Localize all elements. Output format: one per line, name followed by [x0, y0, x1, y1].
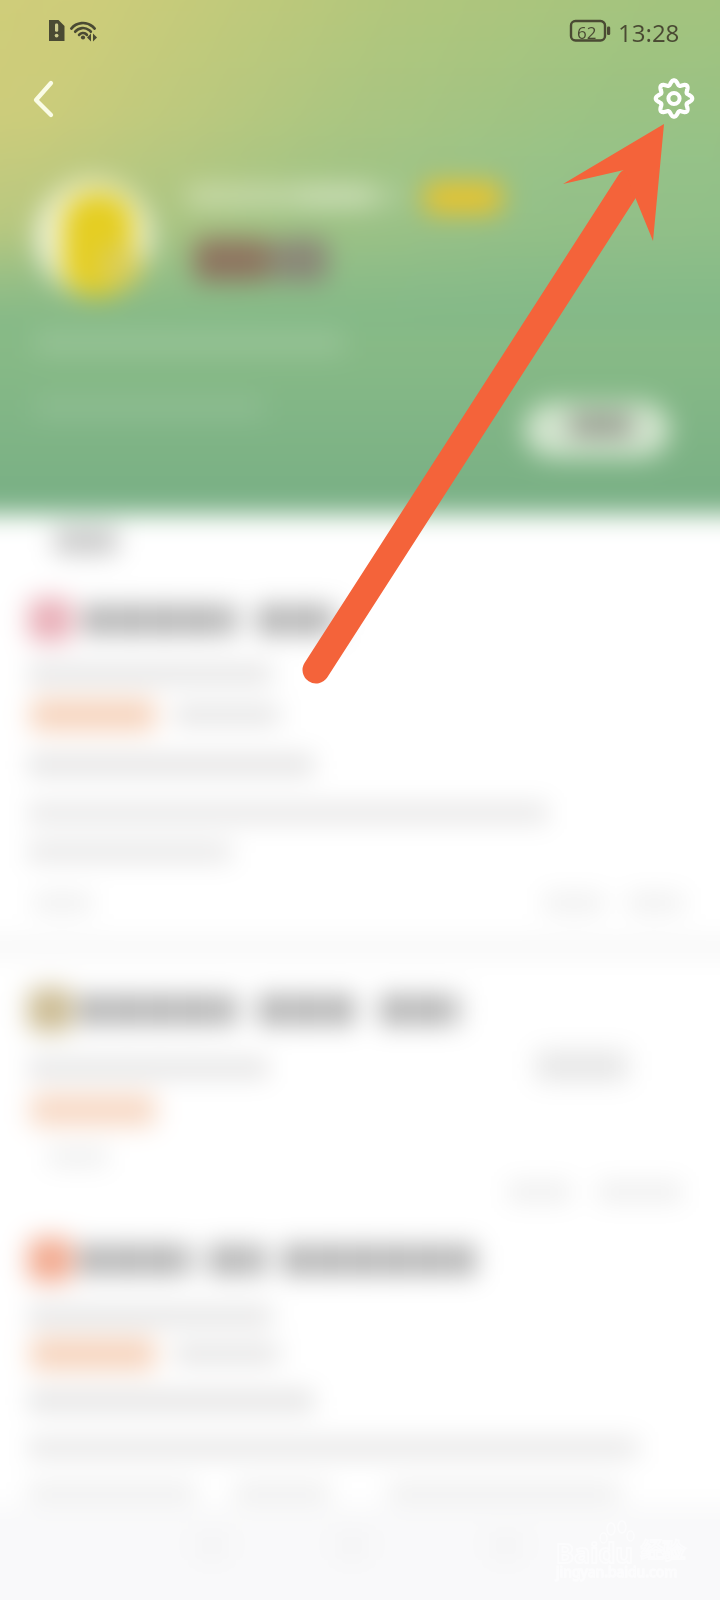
staticText: 62 [577, 21, 597, 44]
button[interactable]: Back [14, 70, 70, 126]
button[interactable]: Settings [646, 70, 702, 126]
staticText: 13:28 [618, 16, 680, 49]
